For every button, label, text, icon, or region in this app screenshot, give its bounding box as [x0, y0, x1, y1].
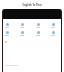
button[interactable]: Item 4 — [50, 23, 56, 28]
button[interactable]: Item 6 — [19, 31, 25, 36]
other: Item 2 — [21, 23, 24, 26]
other: Item 3 — [37, 23, 40, 26]
other: Item 8 — [52, 31, 55, 34]
staticText: English To Thai — [22, 3, 42, 7]
other: Item 4 — [52, 23, 55, 26]
button[interactable]: Item 7 — [35, 31, 41, 36]
button[interactable]: Item 5 — [4, 31, 10, 36]
other: Item 6 — [21, 31, 24, 34]
other: Item 7 — [37, 31, 40, 34]
button[interactable]: Item 2 — [19, 23, 25, 28]
button[interactable]: Item 8 — [50, 31, 56, 36]
button[interactable]: Item 1 — [4, 23, 10, 28]
other: Item 5 — [6, 31, 9, 34]
other: Item 1 — [6, 23, 9, 26]
button[interactable]: Item 3 — [35, 23, 41, 28]
